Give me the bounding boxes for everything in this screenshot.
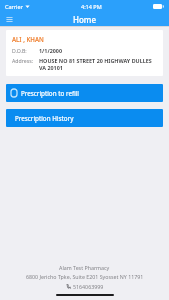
button[interactable]: Prescription to refill xyxy=(6,84,163,102)
staticText: Prescription to refill xyxy=(21,89,79,98)
button[interactable]: Prescription History xyxy=(6,109,163,127)
staticText: HOUSE NO 81 STREET 20 HIGHWAY DULLES xyxy=(39,57,152,64)
button[interactable]: ALI , KHAN xyxy=(6,30,163,76)
staticText: Alam Test Pharmacy xyxy=(59,264,110,271)
staticText: VA 20101 xyxy=(39,64,63,71)
staticText: Carrier xyxy=(5,3,23,10)
staticText: 6800 Jericho Tpke, Suite E201 Syosset NY… xyxy=(26,273,144,280)
staticText: 4:14 PM xyxy=(81,3,102,10)
button[interactable]: Open navigation menu xyxy=(5,15,14,24)
staticText: Prescription History xyxy=(15,114,74,123)
staticText: D.O.B: xyxy=(12,47,27,54)
staticText: 1/1/2000 xyxy=(39,47,62,54)
staticText: 5164063999 xyxy=(73,283,104,290)
staticText: Home xyxy=(73,14,97,25)
button[interactable]: 5164063999 xyxy=(62,282,108,291)
staticText: Address: xyxy=(12,57,34,64)
staticText: ALI , KHAN xyxy=(12,35,44,43)
